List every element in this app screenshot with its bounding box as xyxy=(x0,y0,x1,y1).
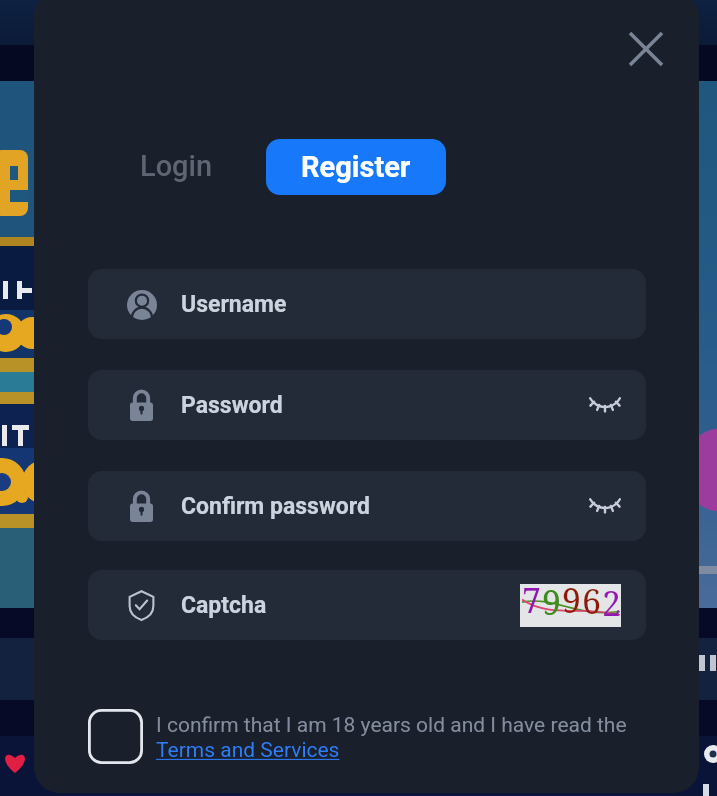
staticText: I confirm that I am 18 years old and I h… xyxy=(156,713,627,738)
button[interactable]: Register xyxy=(266,139,446,195)
staticText: Password xyxy=(181,392,283,419)
staticText: Login xyxy=(140,149,213,183)
staticText: 2 xyxy=(602,580,622,623)
button[interactable]: Show password xyxy=(583,484,627,528)
button[interactable]: Terms and Services xyxy=(156,738,340,763)
button[interactable]: Captcha xyxy=(88,570,646,640)
staticText: Register xyxy=(301,150,411,184)
staticText: Confirm password xyxy=(181,493,370,520)
staticText: 9 xyxy=(562,577,582,620)
button[interactable]: Refresh captcha xyxy=(520,584,621,627)
staticText: Terms and Services xyxy=(156,738,340,763)
button[interactable]: Confirm password xyxy=(88,471,646,541)
staticText: Username xyxy=(181,291,287,318)
button[interactable]: I confirm that I am 18 years old xyxy=(88,709,143,764)
button[interactable]: Password xyxy=(88,370,646,440)
button[interactable]: Login xyxy=(124,133,229,199)
button[interactable]: Close xyxy=(614,17,678,81)
button[interactable]: Show password xyxy=(583,383,627,427)
staticText: 7 xyxy=(522,577,542,620)
staticText: Captcha xyxy=(181,592,267,619)
staticText: 6 xyxy=(582,578,602,621)
button[interactable]: Username xyxy=(88,269,646,339)
staticText: 9 xyxy=(542,579,562,622)
